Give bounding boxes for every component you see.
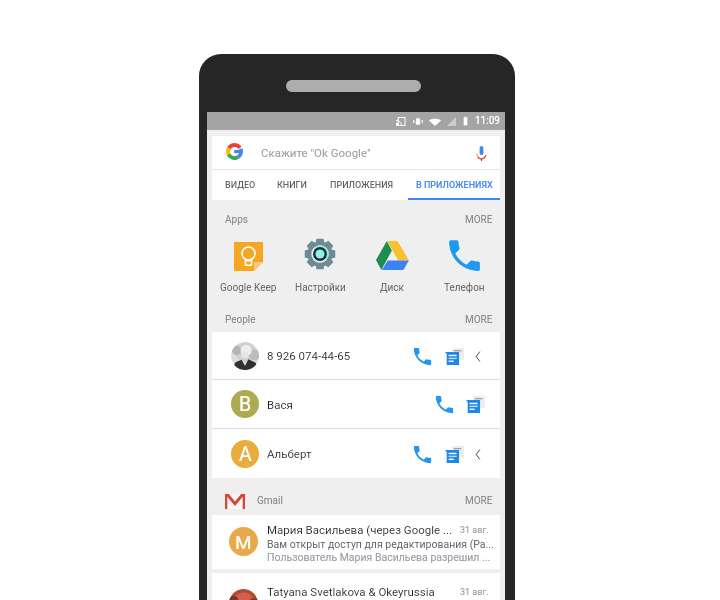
staticText: ВИДЕО: [225, 180, 256, 191]
staticText: 11:09: [475, 115, 500, 127]
staticText: Телефон: [444, 282, 485, 294]
button[interactable]: B: [212, 380, 500, 428]
staticText: Tatyana Svetlakova & Okeyrussia: [267, 585, 435, 598]
staticText: 31 авг.: [460, 587, 489, 598]
button[interactable]: Call: [431, 391, 457, 417]
button[interactable]: Voice search: [469, 141, 493, 165]
staticText: MORE: [465, 314, 493, 326]
staticText: Мария Васильева (через Google ...: [267, 523, 453, 536]
button[interactable]: MORE: [461, 210, 497, 230]
staticText: Вася: [267, 398, 293, 411]
staticText: Диск: [380, 282, 404, 294]
staticText: MORE: [465, 214, 493, 226]
button[interactable]: M: [212, 515, 500, 569]
staticText: A: [239, 443, 252, 466]
staticText: 8 926 074-44-65: [267, 349, 351, 362]
button[interactable]: Скажите "Ok Google": [212, 136, 500, 169]
button[interactable]: 8 926 074-44-65: [212, 332, 500, 379]
button[interactable]: КНИГИ: [269, 170, 315, 200]
staticText: Настройки: [295, 282, 346, 294]
staticText: В ПРИЛОЖЕНИЯХ: [416, 180, 493, 191]
button[interactable]: Настройки: [284, 241, 356, 294]
button[interactable]: MORE: [461, 491, 497, 511]
button[interactable]: Телефон: [428, 241, 500, 294]
staticText: M: [235, 531, 252, 553]
button[interactable]: ПРИЛОЖЕНИЯ: [315, 170, 408, 200]
button[interactable]: 31 авг.: [212, 573, 500, 600]
staticText: B: [239, 393, 252, 416]
button[interactable]: Диск: [356, 241, 428, 294]
button[interactable]: Message: [441, 441, 467, 467]
staticText: КНИГИ: [277, 180, 307, 191]
staticText: ПРИЛОЖЕНИЯ: [330, 180, 394, 191]
button[interactable]: Call: [409, 441, 435, 467]
staticText: MORE: [465, 495, 493, 507]
button[interactable]: Message: [441, 343, 467, 369]
button[interactable]: Expand: [467, 443, 489, 465]
button[interactable]: Google Keep: [212, 241, 284, 294]
staticText: People: [225, 314, 256, 326]
staticText: Скажите "Ok Google": [261, 146, 371, 159]
staticText: Gmail: [257, 495, 283, 507]
staticText: 31 авг.: [460, 525, 489, 536]
staticText: Вам открыт доступ для редактирования (Ра…: [267, 538, 494, 550]
button[interactable]: ВИДЕО: [212, 170, 269, 200]
staticText: Google Keep: [220, 282, 277, 294]
staticText: Apps: [225, 214, 248, 226]
button[interactable]: Call: [409, 343, 435, 369]
staticText: Пользователь Мария Васильева разрешил ..…: [267, 551, 491, 563]
button[interactable]: Expand: [467, 345, 489, 367]
button[interactable]: В ПРИЛОЖЕНИЯХ: [408, 170, 500, 200]
button[interactable]: A: [212, 429, 500, 478]
staticText: Альберт: [267, 447, 312, 460]
button[interactable]: MORE: [461, 310, 497, 330]
button[interactable]: Message: [462, 391, 488, 417]
